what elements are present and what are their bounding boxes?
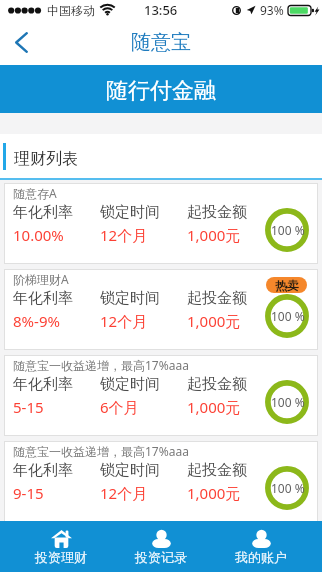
staticText: 13:56 [144, 1, 178, 19]
staticText: 随行付金融 [106, 77, 216, 105]
staticText: 年化利率 [13, 461, 73, 480]
staticText: 随意宝一收益递增，最高17%aaa [13, 443, 189, 459]
staticText: 起投金额 [187, 375, 247, 394]
staticText: 年化利率 [13, 203, 73, 222]
staticText: 阶梯理财A [13, 271, 69, 287]
staticText: 起投金额 [187, 289, 247, 308]
staticText: 1,000元 [187, 483, 241, 503]
staticText: 锁定时间 [100, 289, 160, 308]
staticText: 1,000元 [187, 225, 241, 245]
staticText: 投资理财 [35, 549, 87, 565]
button[interactable]: 投资理财 [11, 521, 111, 572]
staticText: 锁定时间 [100, 461, 160, 480]
button[interactable]: 随意宝一收益递增，最高17%aaa [4, 441, 318, 522]
staticText: 6个月 [100, 397, 139, 417]
staticText: 100 % [271, 394, 305, 410]
staticText: 随意宝 [131, 30, 191, 55]
staticText: 随意宝一收益递增，最高17%aaa [13, 357, 189, 373]
staticText: 1,000元 [187, 397, 241, 417]
staticText: 年化利率 [13, 375, 73, 394]
staticText: 9-15 [13, 483, 44, 503]
staticText: 我的账户 [235, 549, 287, 565]
staticText: 100 % [271, 308, 305, 324]
button[interactable]: 随意宝一收益递增，最高17%aaa [4, 355, 318, 436]
staticText: 12个月 [100, 225, 148, 245]
staticText: 10.00% [13, 225, 64, 245]
staticText: 100 % [271, 480, 305, 496]
staticText: 投资记录 [135, 549, 187, 565]
staticText: 5-15 [13, 397, 44, 417]
staticText: 锁定时间 [100, 203, 160, 222]
button[interactable]: 我的账户 [211, 521, 311, 572]
staticText: 12个月 [100, 483, 148, 503]
staticText: 起投金额 [187, 203, 247, 222]
staticText: 12个月 [100, 311, 148, 331]
button[interactable]: 阶梯理财A [4, 269, 318, 350]
staticText: 理财列表 [14, 149, 78, 169]
staticText: 100 % [271, 222, 305, 238]
button[interactable]: Back [0, 20, 42, 65]
staticText: 随意存A [13, 185, 57, 201]
staticText: 热卖 [275, 278, 299, 293]
staticText: 起投金额 [187, 461, 247, 480]
button[interactable]: 投资记录 [111, 521, 211, 572]
button[interactable]: 随意存A [4, 183, 318, 264]
staticText: 锁定时间 [100, 375, 160, 394]
staticText: 年化利率 [13, 289, 73, 308]
staticText: 8%-9% [13, 311, 60, 331]
staticText: 1,000元 [187, 311, 241, 331]
staticText: 中国移动 [47, 3, 95, 18]
staticText: 93% [260, 2, 284, 18]
